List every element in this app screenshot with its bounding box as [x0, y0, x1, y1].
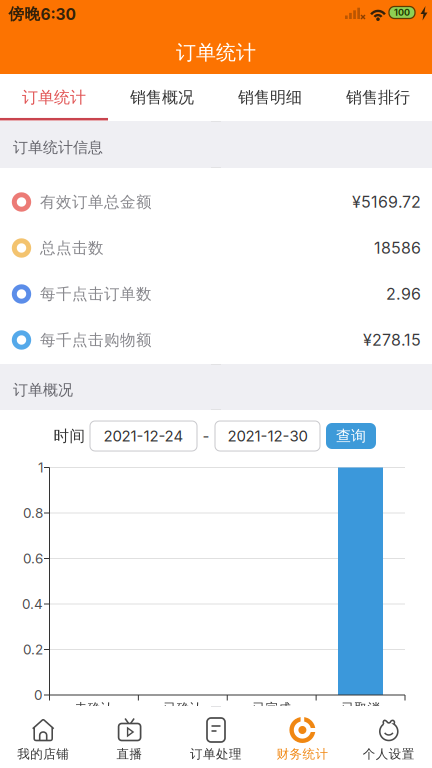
button[interactable]: 我的店铺: [0, 706, 86, 768]
staticText: 订单概况: [13, 381, 73, 399]
staticText: 财务统计: [276, 746, 328, 762]
staticText: 每千点击订单数: [40, 284, 152, 303]
staticText: 已完成: [252, 700, 291, 716]
staticText: 每千点击购物额: [40, 330, 152, 349]
staticText: 个人设置: [363, 746, 415, 762]
staticText: 0.8: [23, 505, 43, 521]
staticText: 我的店铺: [17, 746, 69, 762]
staticText: -: [202, 427, 209, 445]
staticText: ¥5169.72: [352, 193, 421, 211]
staticText: 1: [38, 459, 43, 475]
button[interactable]: 2021-12-30: [215, 421, 320, 451]
button[interactable]: 直播: [86, 706, 173, 768]
button[interactable]: 销售概况: [108, 74, 216, 121]
button[interactable]: 订单统计: [0, 74, 108, 121]
staticText: 查询: [336, 427, 366, 445]
staticText: 订单统计: [176, 40, 256, 65]
staticText: 销售概况: [130, 88, 194, 107]
staticText: 2.96: [386, 285, 421, 303]
staticText: 销售明细: [238, 88, 302, 107]
staticText: 0.6: [23, 550, 43, 566]
button[interactable]: 个人设置: [346, 706, 432, 768]
staticText: 已确认: [163, 700, 202, 716]
staticText: 订单统计信息: [13, 138, 103, 157]
staticText: ¥278.15: [363, 331, 421, 349]
button[interactable]: 查询: [326, 423, 376, 449]
staticText: 直播: [117, 746, 143, 762]
staticText: 2021-12-24: [103, 427, 183, 445]
staticText: 0.2: [23, 641, 43, 657]
button[interactable]: 财务统计: [259, 706, 346, 768]
staticText: 订单处理: [190, 746, 242, 762]
staticText: 傍晚6:30: [8, 4, 75, 23]
staticText: 订单统计: [22, 88, 86, 107]
staticText: 18586: [374, 239, 421, 257]
staticText: 销售排行: [346, 88, 410, 107]
staticText: 未确认: [74, 700, 113, 716]
staticText: 0: [34, 687, 43, 703]
staticText: 已取消: [341, 700, 380, 716]
staticText: 0.4: [22, 596, 43, 612]
staticText: 时间: [53, 426, 85, 445]
button[interactable]: 销售排行: [324, 74, 432, 121]
button[interactable]: 销售明细: [216, 74, 324, 121]
staticText: 100: [394, 7, 410, 18]
staticText: 有效订单总金额: [40, 192, 152, 211]
button[interactable]: 订单处理: [173, 706, 259, 768]
staticText: 总点击数: [40, 238, 104, 257]
staticText: 2021-12-30: [227, 427, 307, 445]
button[interactable]: 2021-12-24: [90, 421, 197, 451]
